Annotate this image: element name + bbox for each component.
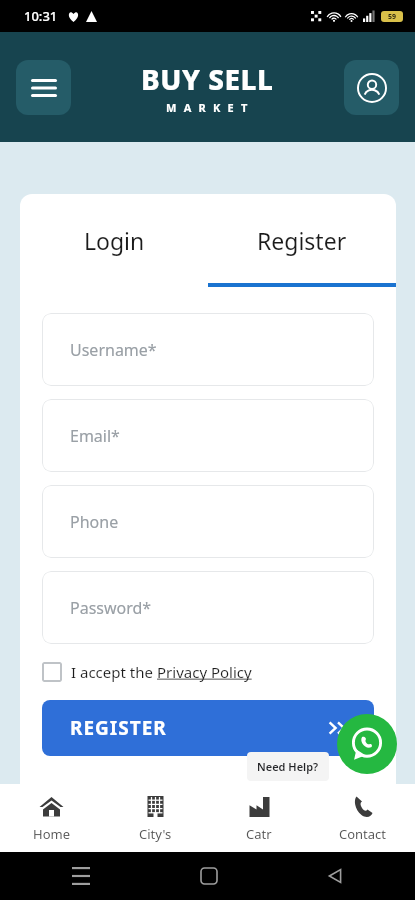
button[interactable]: Login [20,194,208,287]
button[interactable]: Phone [42,485,374,558]
button[interactable]: Username* [42,313,374,386]
button[interactable]: Need Help? [247,752,329,781]
staticText: Login [84,225,145,256]
staticText: M A R K E T [166,100,250,115]
button[interactable]: WhatsApp chat [337,714,397,774]
staticText: Password* [70,597,152,619]
staticText: Contact [339,825,387,843]
staticText: Username* [70,339,157,361]
button[interactable]: I accept the [42,662,252,682]
other: Recents [72,867,90,885]
staticText: Phone [70,511,119,533]
button[interactable]: Contact [311,784,415,852]
button[interactable]: Account [344,60,399,115]
other: Home [201,868,217,884]
staticText: City's [139,825,172,843]
staticText: Home [33,825,70,843]
staticText: Email* [70,425,120,447]
button[interactable]: Password* [42,571,374,644]
button[interactable]: Home [0,784,103,852]
staticText: Catr [246,825,272,843]
button[interactable]: Email* [42,399,374,472]
staticText: Privacy Policy [157,662,252,682]
staticText: Register [257,225,347,256]
staticText: 10:31 [24,7,58,25]
button[interactable]: REGISTER [42,700,374,756]
button[interactable]: City's [103,784,207,852]
button[interactable]: Menu [16,60,71,115]
staticText: Need Help? [257,759,319,774]
staticText: I accept the [71,662,157,682]
button[interactable]: Catr [207,784,311,852]
button[interactable]: Register [208,194,396,287]
staticText: 59 [388,12,397,22]
other: Back [327,868,343,884]
staticText: BUY SELL [141,60,274,98]
staticText: REGISTER [70,715,167,741]
